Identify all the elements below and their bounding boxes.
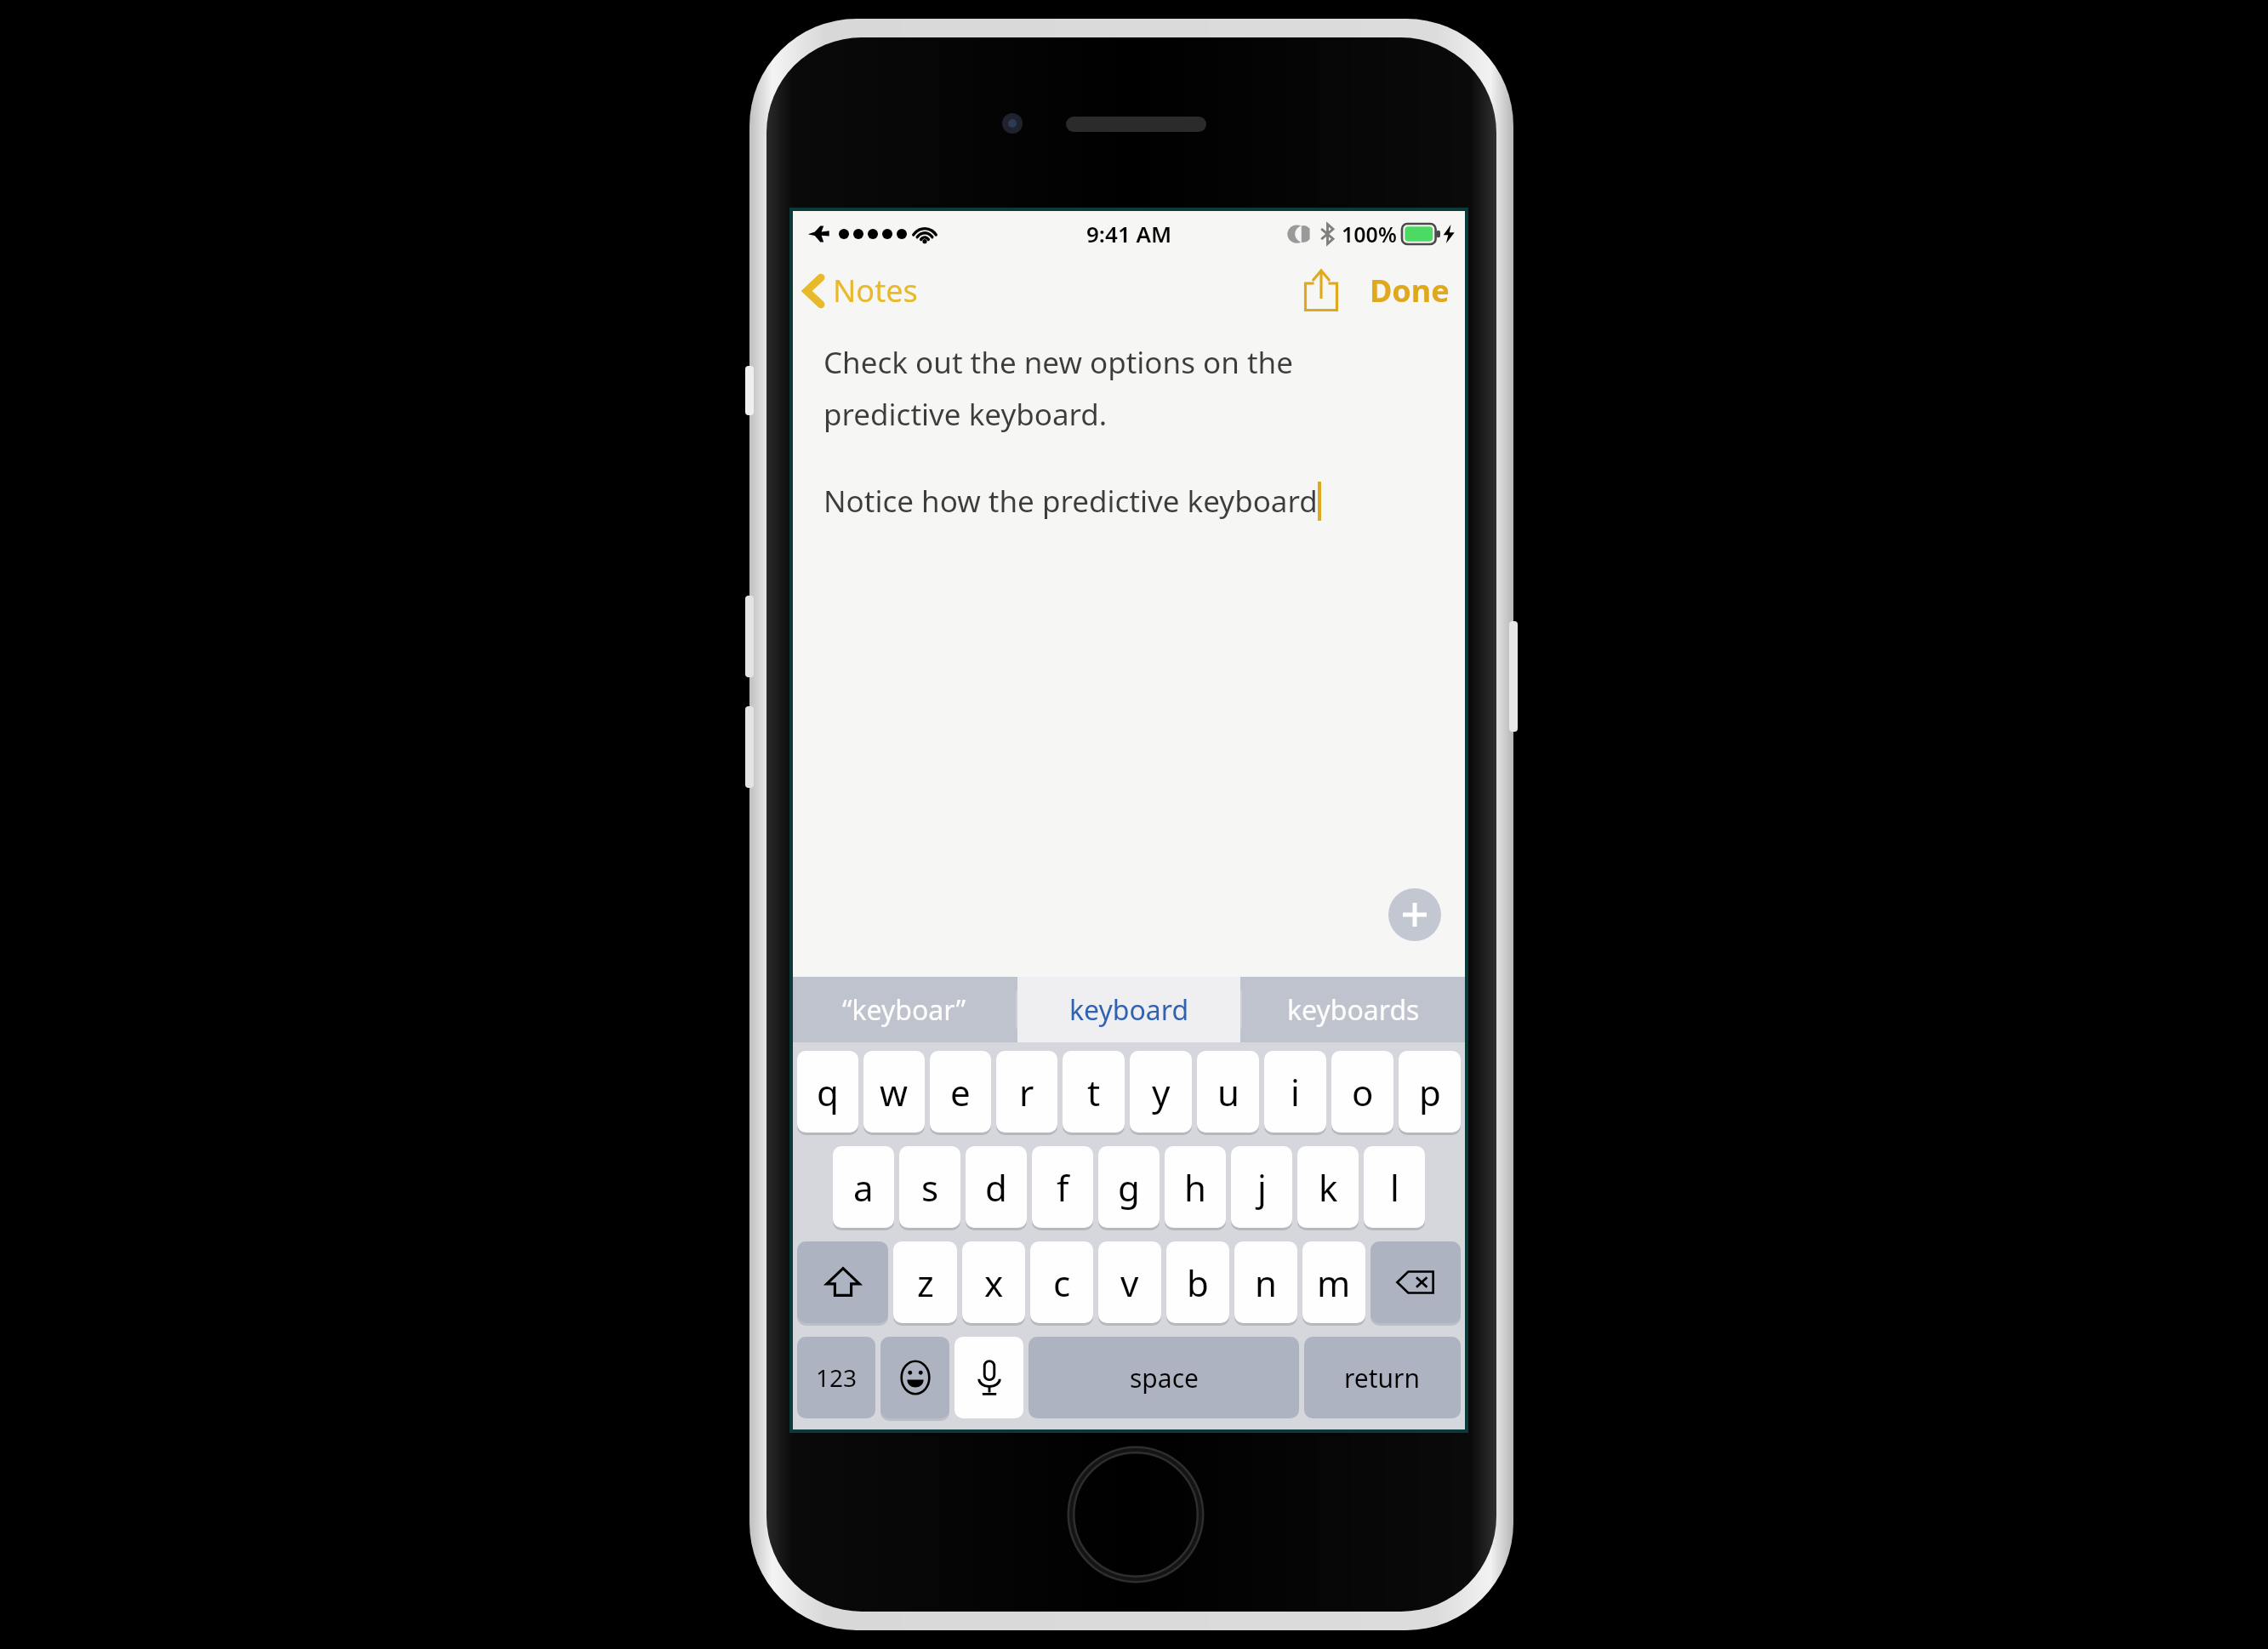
button[interactable]: “keyboar” xyxy=(793,977,1016,1042)
button[interactable]: i xyxy=(1264,1051,1326,1133)
button[interactable]: y xyxy=(1130,1051,1192,1133)
staticText: a xyxy=(853,1163,874,1212)
staticText: l xyxy=(1390,1163,1399,1212)
button[interactable]: v xyxy=(1098,1241,1161,1323)
button[interactable]: c xyxy=(1030,1241,1093,1323)
button[interactable]: Done xyxy=(1358,263,1462,318)
button[interactable]: u xyxy=(1197,1051,1259,1133)
button[interactable]: q xyxy=(797,1051,858,1133)
button[interactable]: a xyxy=(833,1146,894,1228)
button[interactable]: k xyxy=(1297,1146,1359,1228)
button[interactable]: j xyxy=(1231,1146,1292,1228)
staticText: x xyxy=(984,1258,1004,1307)
button[interactable]: f xyxy=(1032,1146,1093,1228)
staticText: g xyxy=(1118,1163,1140,1212)
button[interactable]: p xyxy=(1399,1051,1461,1133)
staticText: t xyxy=(1087,1068,1101,1116)
button[interactable]: w xyxy=(863,1051,925,1133)
button[interactable]: Dictation xyxy=(954,1337,1023,1418)
button[interactable]: Notes xyxy=(793,263,930,318)
button[interactable]: Add attachment xyxy=(1388,888,1441,941)
staticText: “keyboar” xyxy=(842,991,966,1029)
button[interactable]: Emoji xyxy=(880,1337,949,1418)
staticText: f xyxy=(1057,1163,1069,1212)
staticText: c xyxy=(1053,1258,1071,1307)
staticText: Notes xyxy=(833,270,918,311)
staticText: r xyxy=(1019,1068,1034,1116)
button[interactable]: Shift xyxy=(797,1241,888,1323)
button[interactable]: Share xyxy=(1290,262,1353,318)
staticText: keyboard xyxy=(1069,991,1189,1029)
staticText: Check out the new options on the xyxy=(823,342,1293,383)
staticText: s xyxy=(921,1163,939,1212)
staticText: v xyxy=(1120,1258,1139,1307)
button[interactable]: t xyxy=(1063,1051,1125,1133)
staticText: y xyxy=(1152,1068,1171,1116)
staticText: i xyxy=(1291,1068,1300,1116)
button[interactable]: b xyxy=(1166,1241,1229,1323)
staticText: space xyxy=(1130,1361,1199,1395)
button[interactable]: e xyxy=(930,1051,991,1133)
staticText: d xyxy=(985,1163,1007,1212)
staticText: 9:41 AM xyxy=(1086,219,1172,248)
staticText: w xyxy=(880,1068,909,1116)
staticText: return xyxy=(1344,1361,1421,1395)
staticText: o xyxy=(1352,1068,1374,1116)
button[interactable]: o xyxy=(1331,1051,1393,1133)
button[interactable]: n xyxy=(1234,1241,1297,1323)
staticText: h xyxy=(1184,1163,1206,1212)
button[interactable]: d xyxy=(966,1146,1027,1228)
button[interactable]: h xyxy=(1165,1146,1226,1228)
staticText: k xyxy=(1319,1163,1338,1212)
button[interactable]: space xyxy=(1029,1337,1299,1418)
staticText: j xyxy=(1257,1163,1267,1212)
staticText: Notice how the predictive keyboard xyxy=(823,481,1318,522)
staticText: m xyxy=(1317,1258,1351,1307)
staticText: n xyxy=(1255,1258,1277,1307)
staticText: b xyxy=(1187,1258,1209,1307)
button[interactable]: s xyxy=(899,1146,960,1228)
staticText: 123 xyxy=(816,1361,858,1394)
staticText: Done xyxy=(1370,270,1450,311)
button[interactable]: return xyxy=(1304,1337,1461,1418)
staticText: 100% xyxy=(1342,220,1397,248)
button[interactable]: g xyxy=(1098,1146,1160,1228)
button[interactable]: l xyxy=(1364,1146,1425,1228)
button[interactable]: keyboards xyxy=(1242,977,1465,1042)
button[interactable]: r xyxy=(996,1051,1057,1133)
button[interactable]: 123 xyxy=(797,1337,875,1418)
staticText: predictive keyboard. xyxy=(823,394,1108,435)
button[interactable]: z xyxy=(893,1241,957,1323)
staticText: keyboards xyxy=(1287,991,1420,1029)
staticText: q xyxy=(817,1068,839,1116)
button[interactable]: m xyxy=(1302,1241,1365,1323)
button[interactable]: x xyxy=(962,1241,1025,1323)
button[interactable]: Delete xyxy=(1370,1241,1461,1323)
button[interactable]: keyboard xyxy=(1017,977,1240,1042)
staticText: p xyxy=(1419,1068,1441,1116)
staticText: e xyxy=(950,1068,971,1116)
staticText: u xyxy=(1217,1068,1239,1116)
staticText: z xyxy=(917,1258,934,1307)
